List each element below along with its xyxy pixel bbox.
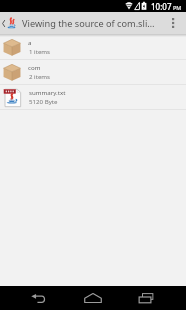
staticText: com bbox=[28, 63, 41, 71]
button[interactable]: Navigate up bbox=[0, 12, 18, 34]
button[interactable]: Recent apps bbox=[122, 286, 170, 310]
staticText: Viewing the source of com.sli… bbox=[22, 17, 155, 30]
staticText: 10:07 bbox=[151, 1, 172, 12]
button[interactable]: com bbox=[0, 60, 186, 85]
staticText: 2 items bbox=[29, 72, 51, 80]
button[interactable]: Home bbox=[69, 286, 117, 310]
button[interactable]: a bbox=[0, 35, 186, 60]
staticText: PM bbox=[173, 4, 182, 11]
staticText: summary.txt bbox=[29, 88, 66, 96]
staticText: 5120 Byte bbox=[29, 97, 58, 105]
button[interactable]: More options bbox=[160, 12, 186, 34]
button[interactable]: summary.txt bbox=[0, 85, 186, 110]
staticText: 1 items bbox=[29, 47, 51, 55]
button[interactable]: Back bbox=[14, 286, 62, 310]
staticText: a bbox=[28, 38, 32, 46]
